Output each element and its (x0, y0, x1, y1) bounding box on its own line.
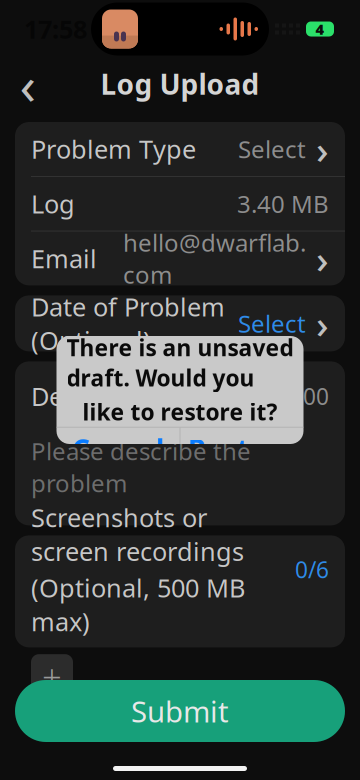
staticText: ‹ (19, 49, 36, 119)
staticText: Select (238, 307, 306, 339)
staticText: Log (31, 187, 75, 220)
staticText: Cancel (72, 431, 164, 468)
staticText: › (316, 123, 329, 175)
button[interactable]: Back (6, 62, 50, 106)
staticText: 0/6 (295, 554, 329, 584)
staticText: Date of Problem (Optional) (31, 290, 225, 357)
staticText: Submit (131, 691, 229, 730)
staticText: 4 (315, 19, 324, 39)
staticText: Problem Type (31, 132, 196, 166)
staticText: › (316, 233, 329, 284)
staticText: hello@dwarflab.com (123, 226, 306, 290)
staticText: like to restore it? (82, 397, 277, 427)
button[interactable]: Problem Type (15, 122, 345, 176)
button[interactable]: Date of Problem (Optional) (15, 295, 345, 351)
staticText: Log Upload (100, 65, 259, 103)
staticText: (Optional, 500 MB max) (31, 571, 245, 638)
staticText: › (316, 298, 329, 349)
staticText: Restore (188, 431, 296, 468)
button[interactable]: Add screenshot (31, 654, 73, 698)
staticText: Description (31, 379, 167, 413)
staticText: Screenshots or screen recordings (31, 501, 244, 568)
staticText: Email (31, 242, 97, 275)
staticText: There is an unsaved draft. Would you (66, 332, 293, 393)
staticText: 3.40 MB (237, 188, 329, 220)
button[interactable]: Email (15, 231, 345, 285)
button[interactable]: Submit (15, 680, 345, 742)
button[interactable]: Restore (180, 427, 304, 471)
staticText: + (42, 653, 62, 699)
staticText: 0/200 (269, 381, 329, 411)
button[interactable]: Cancel (56, 427, 180, 471)
staticText: Select (238, 133, 306, 165)
staticText: Please describe the problem (31, 435, 251, 499)
